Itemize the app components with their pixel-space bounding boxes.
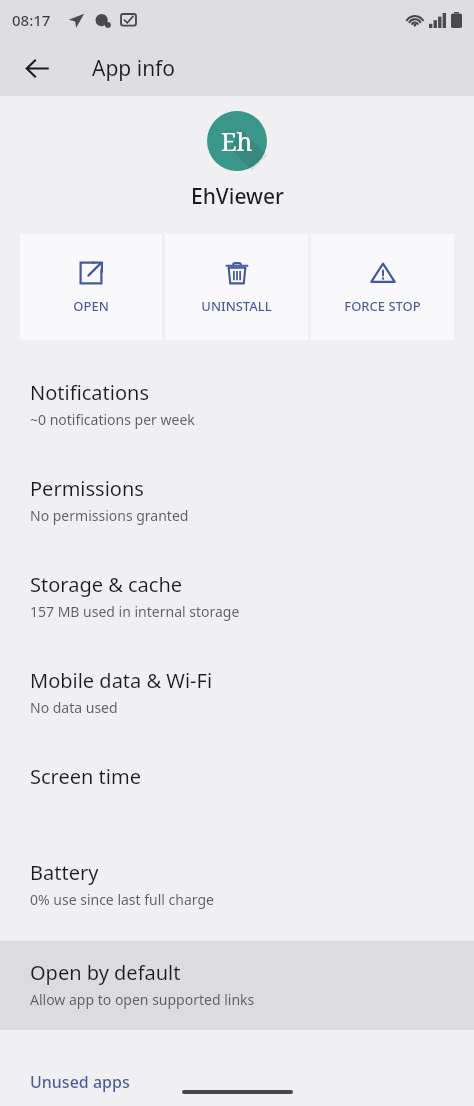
staticText: Storage & cache xyxy=(30,571,183,598)
button[interactable]: OPEN xyxy=(20,234,162,340)
staticText: App info xyxy=(92,54,176,83)
staticText: Unused apps xyxy=(30,1071,130,1093)
button[interactable]: Mobile data & Wi-Fi xyxy=(0,653,474,749)
staticText: EhViewer xyxy=(191,182,284,211)
button[interactable]: Unused apps xyxy=(0,1059,474,1105)
staticText: Mobile data & Wi-Fi xyxy=(30,667,213,694)
staticText: Allow app to open supported links xyxy=(30,990,255,1009)
button[interactable]: Back xyxy=(12,43,62,93)
staticText: FORCE STOP xyxy=(344,297,421,315)
staticText: Eh xyxy=(221,124,253,158)
button[interactable]: FORCE STOP xyxy=(311,234,454,340)
button[interactable]: Open by default xyxy=(0,941,474,1030)
button[interactable]: Screen time xyxy=(0,749,474,845)
staticText: Notifications xyxy=(30,379,149,406)
button[interactable]: Notifications xyxy=(0,365,474,461)
staticText: No data used xyxy=(30,698,118,717)
staticText: OPEN xyxy=(73,297,109,315)
staticText: No permissions granted xyxy=(30,506,189,525)
staticText: Battery xyxy=(30,859,99,886)
staticText: Permissions xyxy=(30,475,144,502)
staticText: Open by default xyxy=(30,959,181,986)
staticText: 08:17 xyxy=(12,10,51,30)
staticText: UNINSTALL xyxy=(201,297,272,315)
staticText: 157 MB used in internal storage xyxy=(30,602,240,621)
staticText: Screen time xyxy=(30,763,141,790)
button[interactable]: Permissions xyxy=(0,461,474,557)
staticText: 0% use since last full charge xyxy=(30,890,214,909)
staticText: ~0 notifications per week xyxy=(30,410,195,429)
button[interactable]: Storage & cache xyxy=(0,557,474,653)
button[interactable]: Battery xyxy=(0,845,474,941)
button[interactable]: UNINSTALL xyxy=(165,234,308,340)
